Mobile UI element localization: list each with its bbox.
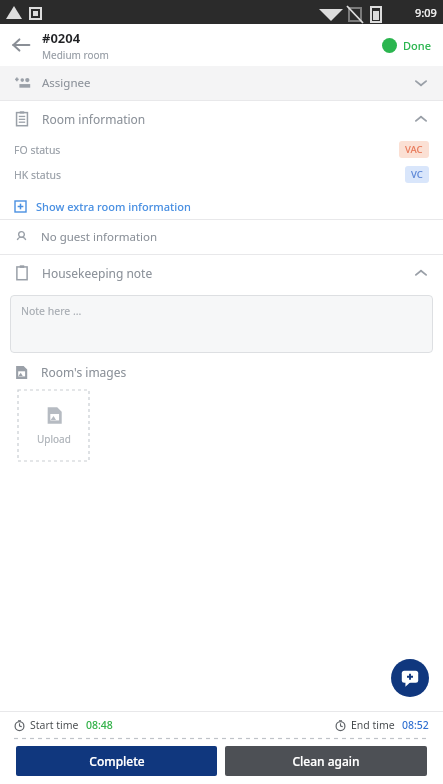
button[interactable]: Assignee <box>0 66 443 100</box>
staticText: Room information <box>42 111 146 127</box>
staticText: 08:48 <box>86 718 113 732</box>
button[interactable]: Upload image <box>18 390 89 461</box>
button[interactable]: Done <box>370 38 443 53</box>
staticText: VAC <box>405 143 423 156</box>
staticText: 9:09 <box>415 5 437 20</box>
staticText: Note here ... <box>21 304 82 318</box>
button[interactable]: Housekeeping note <box>0 255 443 291</box>
button[interactable]: Complete <box>16 746 217 776</box>
staticText: FO status <box>14 143 61 157</box>
staticText: Room's images <box>41 364 127 380</box>
button[interactable]: Note here ... <box>10 295 433 353</box>
staticText: Housekeeping note <box>42 265 153 281</box>
staticText: VC <box>411 168 423 181</box>
button[interactable]: No guest information <box>0 220 443 254</box>
staticText: Medium room <box>42 48 109 62</box>
staticText: Complete <box>89 753 145 769</box>
staticText: #0204 <box>42 29 81 47</box>
button[interactable]: Add note <box>391 659 429 697</box>
button[interactable]: Room information <box>0 101 443 137</box>
staticText: No guest information <box>41 229 158 245</box>
staticText: 08:52 <box>402 718 429 732</box>
staticText: Show extra room information <box>36 199 191 214</box>
staticText: Start time <box>30 718 79 732</box>
staticText: Done <box>403 38 431 53</box>
staticText: End time <box>351 718 395 732</box>
button[interactable]: Clean again <box>225 746 427 776</box>
staticText: Upload <box>37 432 71 446</box>
staticText: Clean again <box>292 753 360 769</box>
button[interactable]: Back <box>0 24 42 66</box>
button[interactable]: Show extra room information <box>0 193 443 219</box>
staticText: Assignee <box>42 75 91 91</box>
staticText: HK status <box>14 168 62 182</box>
